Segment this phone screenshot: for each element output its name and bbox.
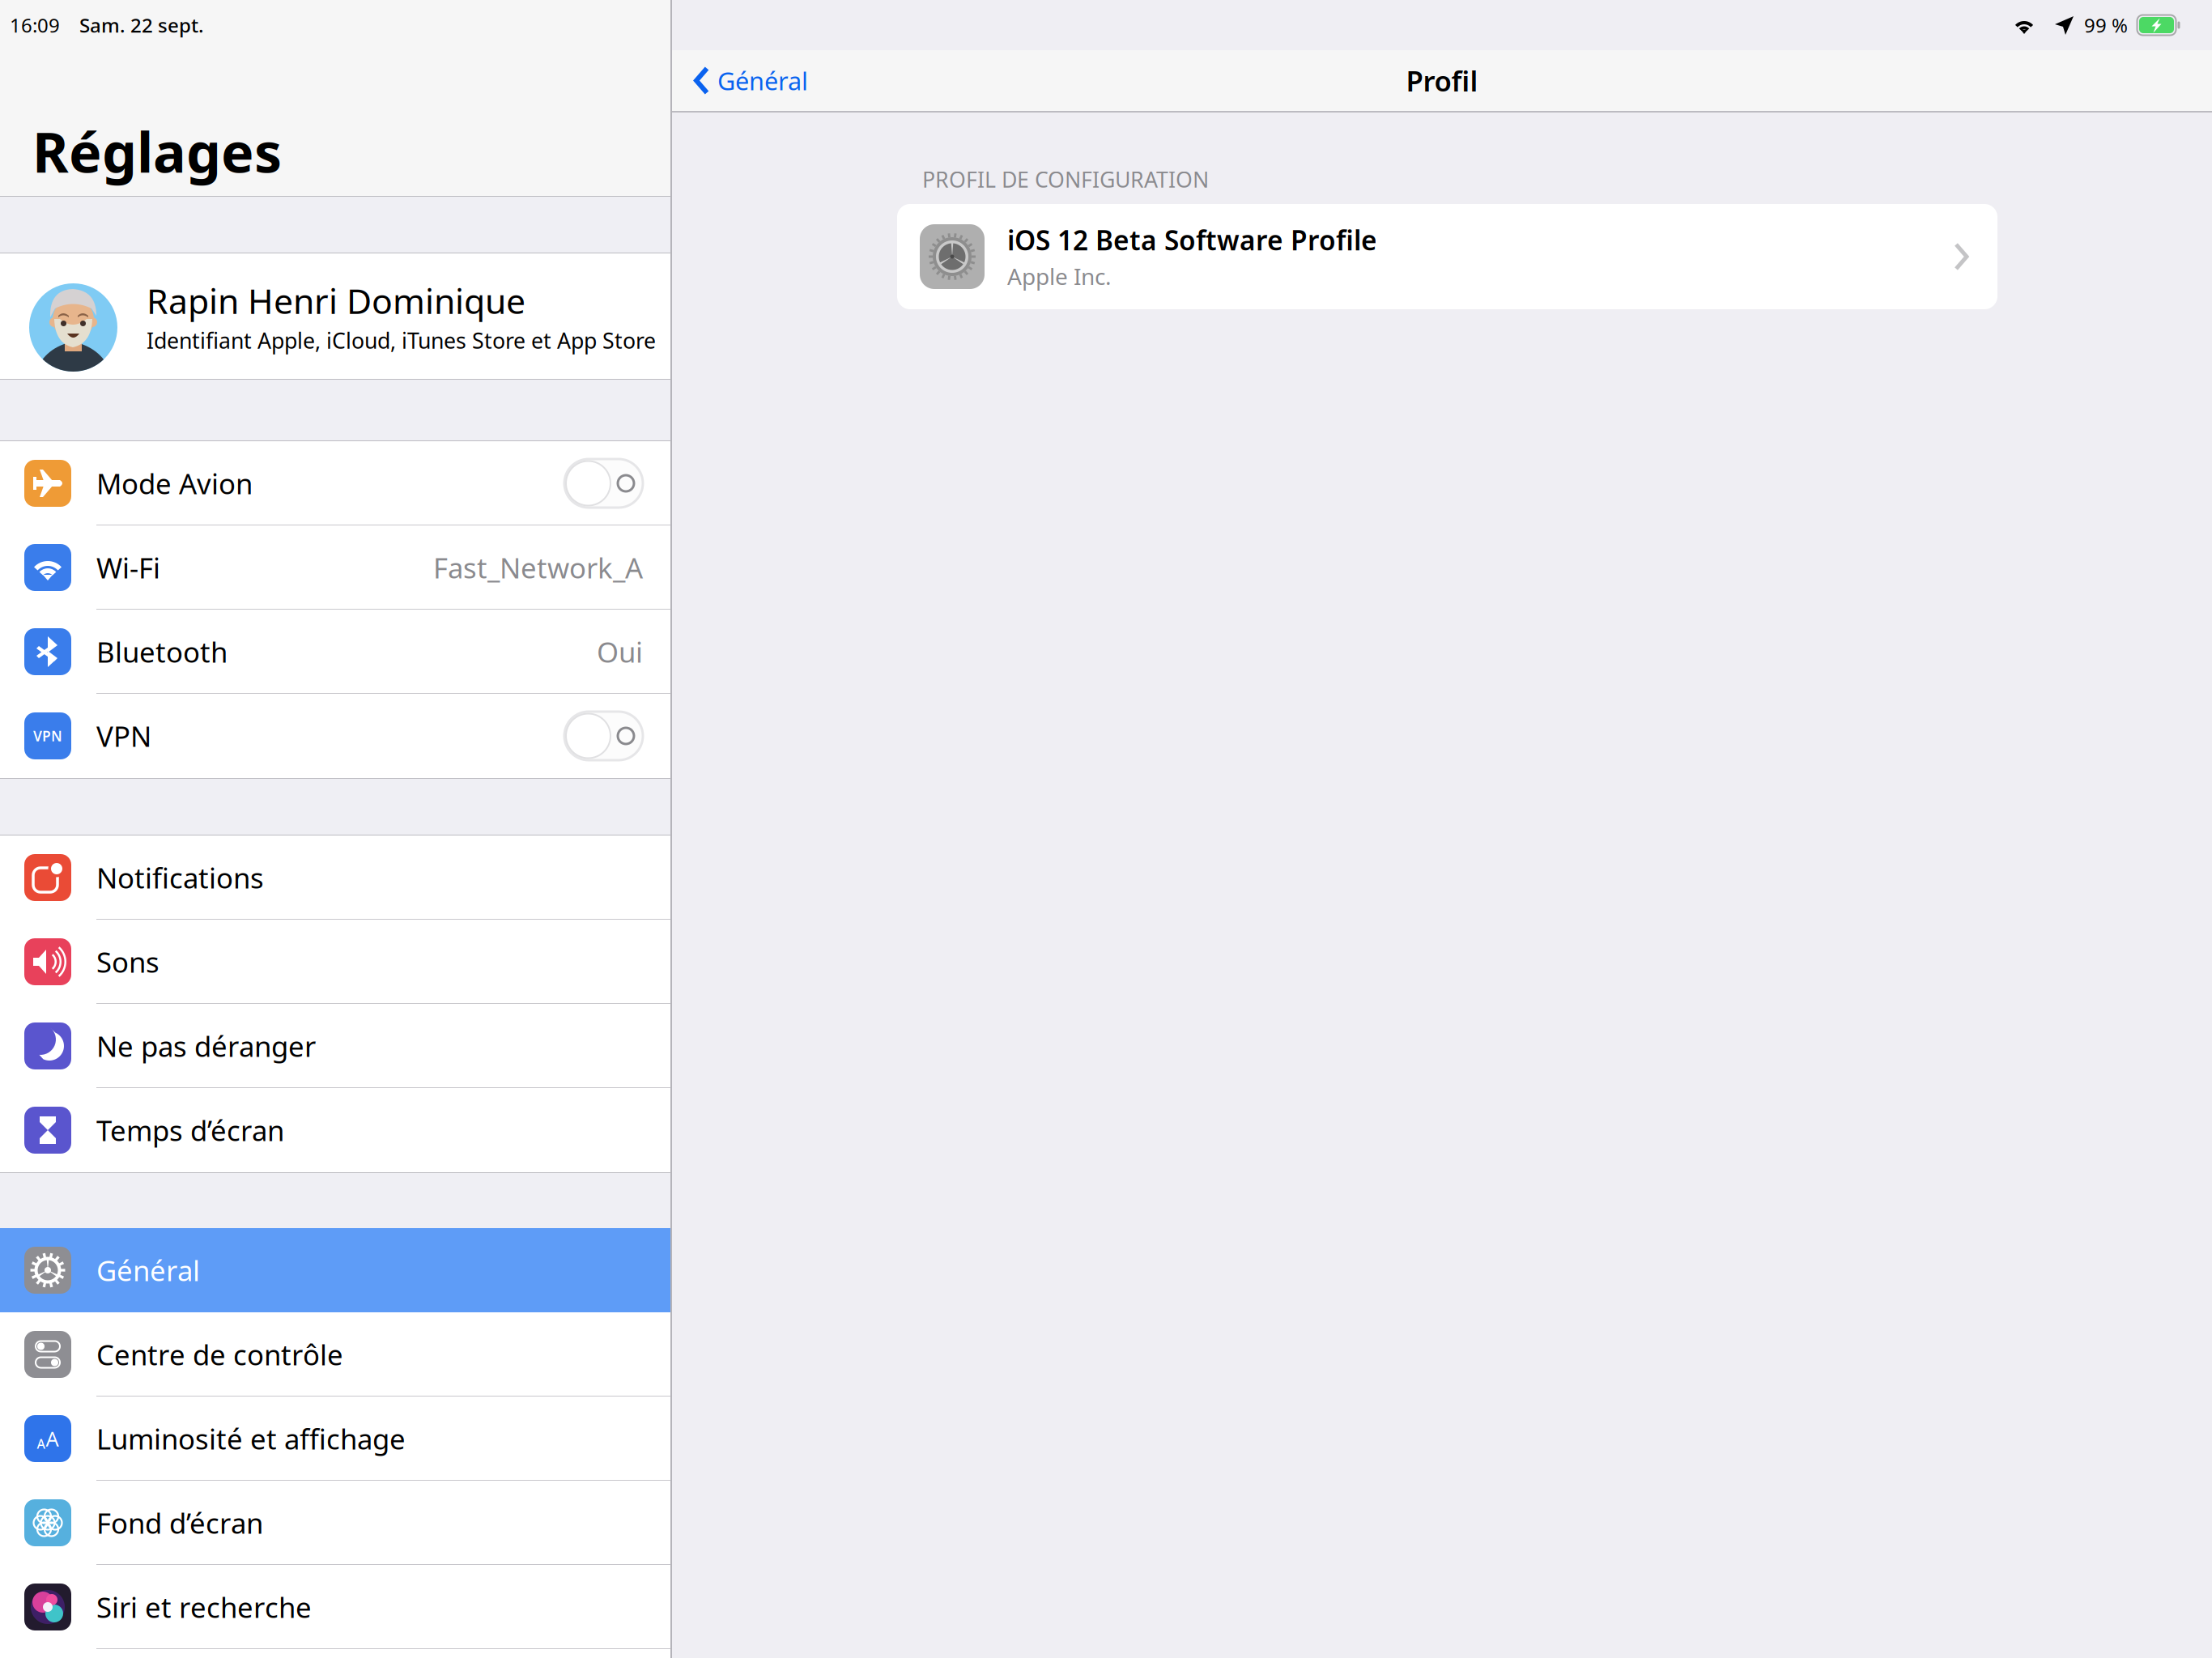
staticText: Siri et recherche (96, 1588, 312, 1626)
staticText: VPN (96, 717, 151, 755)
button[interactable]: Notifications (0, 835, 670, 920)
staticText: Profil (1406, 62, 1478, 99)
staticText: Bluetooth (96, 633, 228, 670)
staticText: Réglages (32, 115, 282, 188)
staticText: A (37, 1435, 45, 1452)
staticText: Sam. 22 sept. (79, 12, 204, 38)
button[interactable]: Rapin Henri Dominique (0, 253, 670, 379)
staticText: Wi-Fi (96, 549, 160, 586)
staticText: iOS 12 Beta Software Profile (1007, 222, 1377, 258)
staticText: Général (96, 1252, 200, 1289)
staticText: Oui (597, 633, 643, 670)
button[interactable]: Sons (0, 920, 670, 1004)
button[interactable]: A (0, 1397, 670, 1481)
staticText: Ne pas déranger (96, 1027, 316, 1065)
staticText: Temps d’écran (96, 1112, 284, 1149)
staticText: 99 % (2084, 12, 2128, 38)
staticText: Rapin Henri Dominique (147, 278, 525, 324)
staticText: Luminosité et affichage (96, 1420, 406, 1457)
staticText: Général (717, 64, 808, 97)
button[interactable]: Centre de contrôle (0, 1312, 670, 1397)
staticText: Fast_Network_A (433, 549, 643, 586)
staticText: PROFIL DE CONFIGURATION (922, 165, 1209, 193)
button[interactable]: Ne pas déranger (0, 1004, 670, 1088)
button[interactable]: Fond d’écran (0, 1481, 670, 1565)
button[interactable]: Siri et recherche (0, 1565, 670, 1649)
staticText: Centre de contrôle (96, 1336, 343, 1373)
staticText: Notifications (96, 859, 264, 896)
staticText: Identifiant Apple, iCloud, iTunes Store … (147, 326, 656, 355)
staticText: 16:09 (10, 12, 60, 38)
staticText: Apple Inc. (1007, 261, 1112, 291)
button[interactable]: VPN (0, 694, 670, 778)
staticText: Sons (96, 943, 160, 980)
staticText: Fond d’écran (96, 1504, 263, 1541)
button[interactable]: Mode Avion (0, 441, 670, 525)
button[interactable]: Bluetooth (0, 610, 670, 694)
button[interactable]: Retour à Général (672, 50, 821, 111)
button[interactable]: Général (0, 1228, 670, 1312)
staticText: VPN (33, 727, 62, 745)
button[interactable]: Wi-Fi (0, 525, 670, 610)
staticText: A (46, 1425, 59, 1452)
button[interactable]: iOS 12 Beta Software Profile (897, 204, 1997, 309)
staticText: Mode Avion (96, 465, 253, 502)
button[interactable]: Temps d’écran (0, 1088, 670, 1172)
